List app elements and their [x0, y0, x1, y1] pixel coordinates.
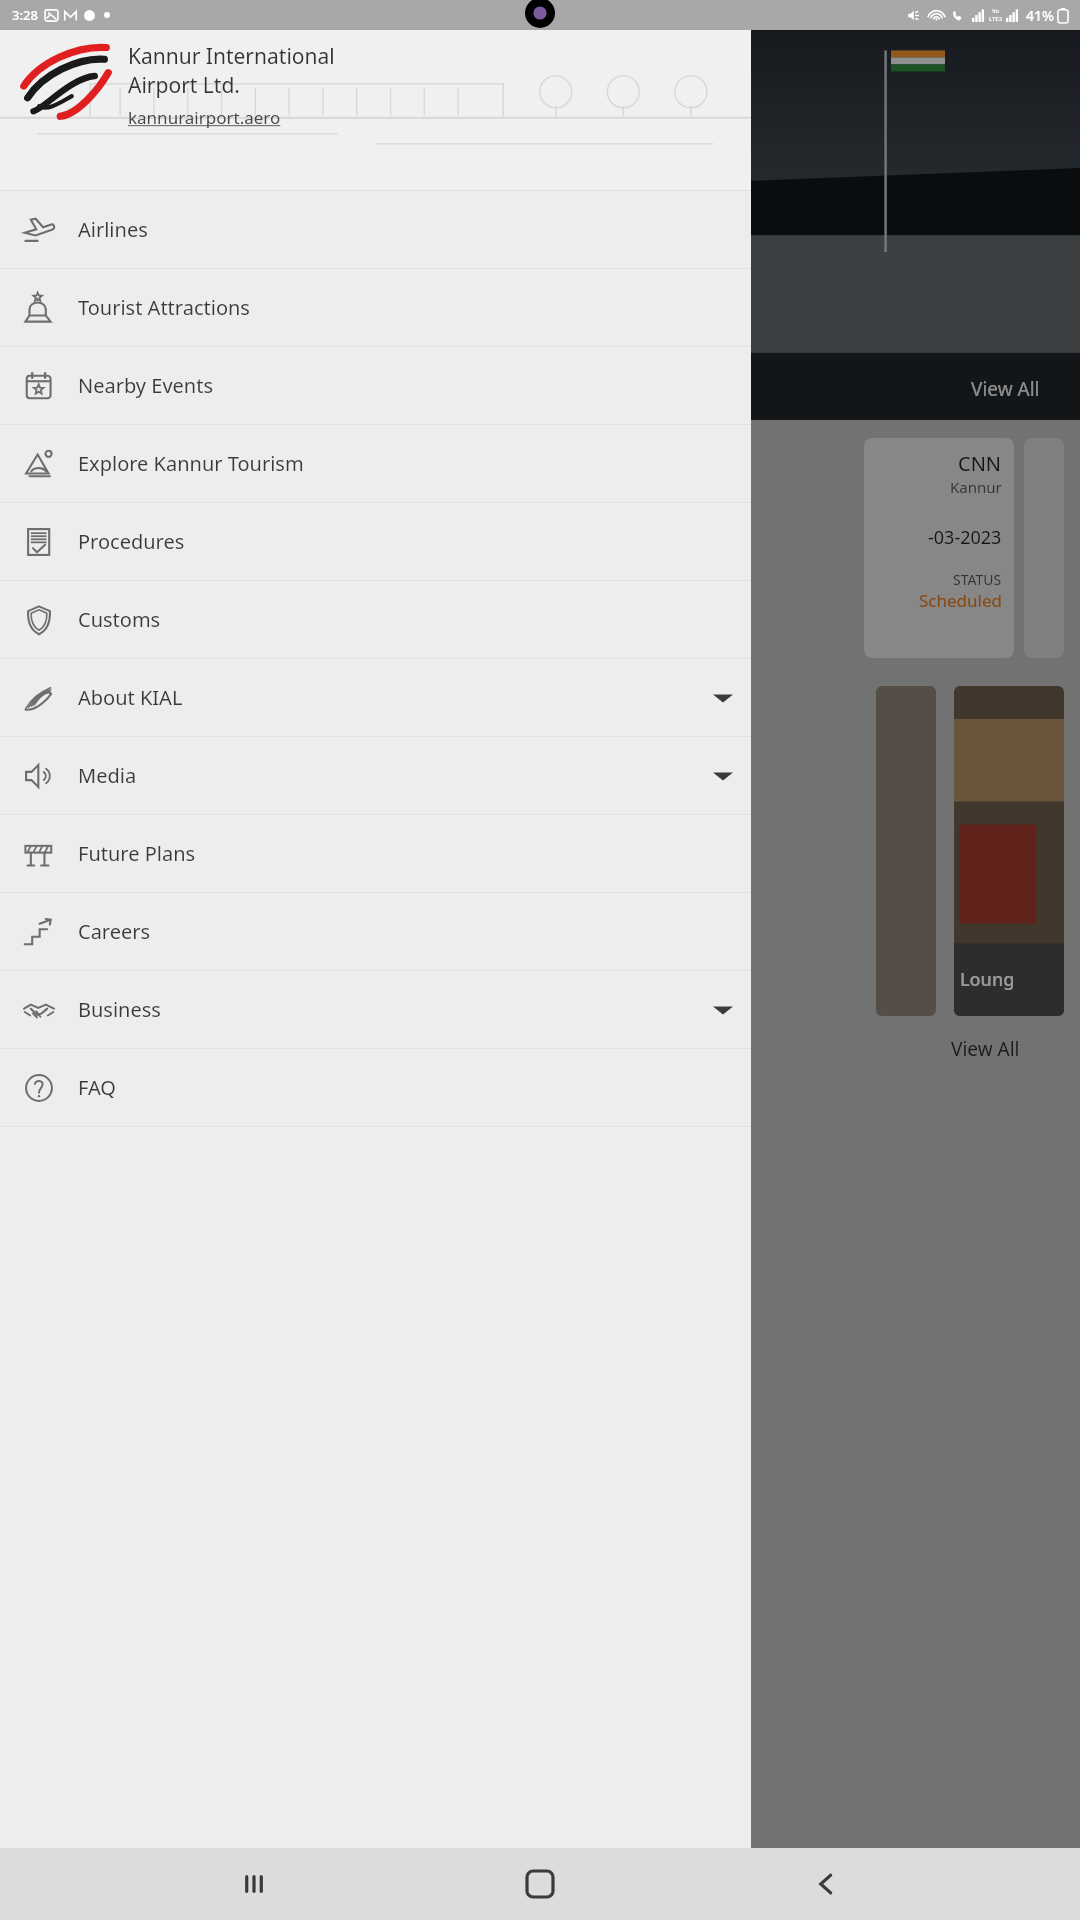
- staticText: Vo: [992, 7, 1000, 15]
- staticText: FAQ: [78, 1074, 116, 1101]
- button[interactable]: CNN: [864, 438, 1014, 658]
- staticText: LTE2: [989, 15, 1003, 23]
- button[interactable]: Media: [0, 737, 751, 814]
- button[interactable]: Recent apps: [222, 1852, 286, 1916]
- button[interactable]: Nearby Events: [0, 347, 751, 424]
- staticText: Tourist Attractions: [78, 294, 250, 321]
- button[interactable]: Business: [0, 971, 751, 1048]
- staticText: 41%: [1026, 6, 1054, 25]
- staticText: Customs: [78, 606, 161, 633]
- button[interactable]: View All: [951, 1036, 1020, 1062]
- staticText: Airlines: [78, 216, 148, 243]
- button[interactable]: Tourist Attractions: [0, 269, 751, 346]
- staticText: -03-2023: [928, 525, 1002, 550]
- staticText: kannurairport.aero: [128, 106, 281, 129]
- button[interactable]: FAQ: [0, 1049, 751, 1126]
- button[interactable]: Careers: [0, 893, 751, 970]
- staticText: Loung: [960, 967, 1015, 992]
- staticText: View All: [971, 376, 1040, 402]
- button[interactable]: Customs: [0, 581, 751, 658]
- staticText: Kannur: [950, 477, 1002, 497]
- staticText: Kannur International: [128, 42, 335, 71]
- staticText: Airport Ltd.: [128, 71, 240, 100]
- staticText: Scheduled: [919, 589, 1002, 612]
- staticText: Nearby Events: [78, 372, 213, 399]
- button[interactable]: Procedures: [0, 503, 751, 580]
- staticText: Procedures: [78, 528, 185, 555]
- staticText: Business: [78, 996, 161, 1023]
- staticText: View All: [951, 1036, 1020, 1062]
- button[interactable]: Future Plans: [0, 815, 751, 892]
- staticText: Media: [78, 762, 137, 789]
- button[interactable]: Back: [794, 1852, 858, 1916]
- button[interactable]: Home: [508, 1852, 572, 1916]
- staticText: Future Plans: [78, 840, 196, 867]
- button[interactable]: Explore Kannur Tourism: [0, 425, 751, 502]
- staticText: STATUS: [953, 570, 1002, 589]
- staticText: About KIAL: [78, 684, 183, 711]
- button[interactable]: About KIAL: [0, 659, 751, 736]
- staticText: 3:28: [12, 6, 38, 24]
- staticText: CNN: [958, 450, 1002, 477]
- button[interactable]: View All: [971, 376, 1040, 402]
- button[interactable]: Loung: [954, 686, 1064, 1016]
- button[interactable]: Airlines: [0, 191, 751, 268]
- staticText: Careers: [78, 918, 151, 945]
- staticText: Explore Kannur Tourism: [78, 450, 304, 477]
- button[interactable]: kannurairport.aero: [128, 106, 281, 129]
